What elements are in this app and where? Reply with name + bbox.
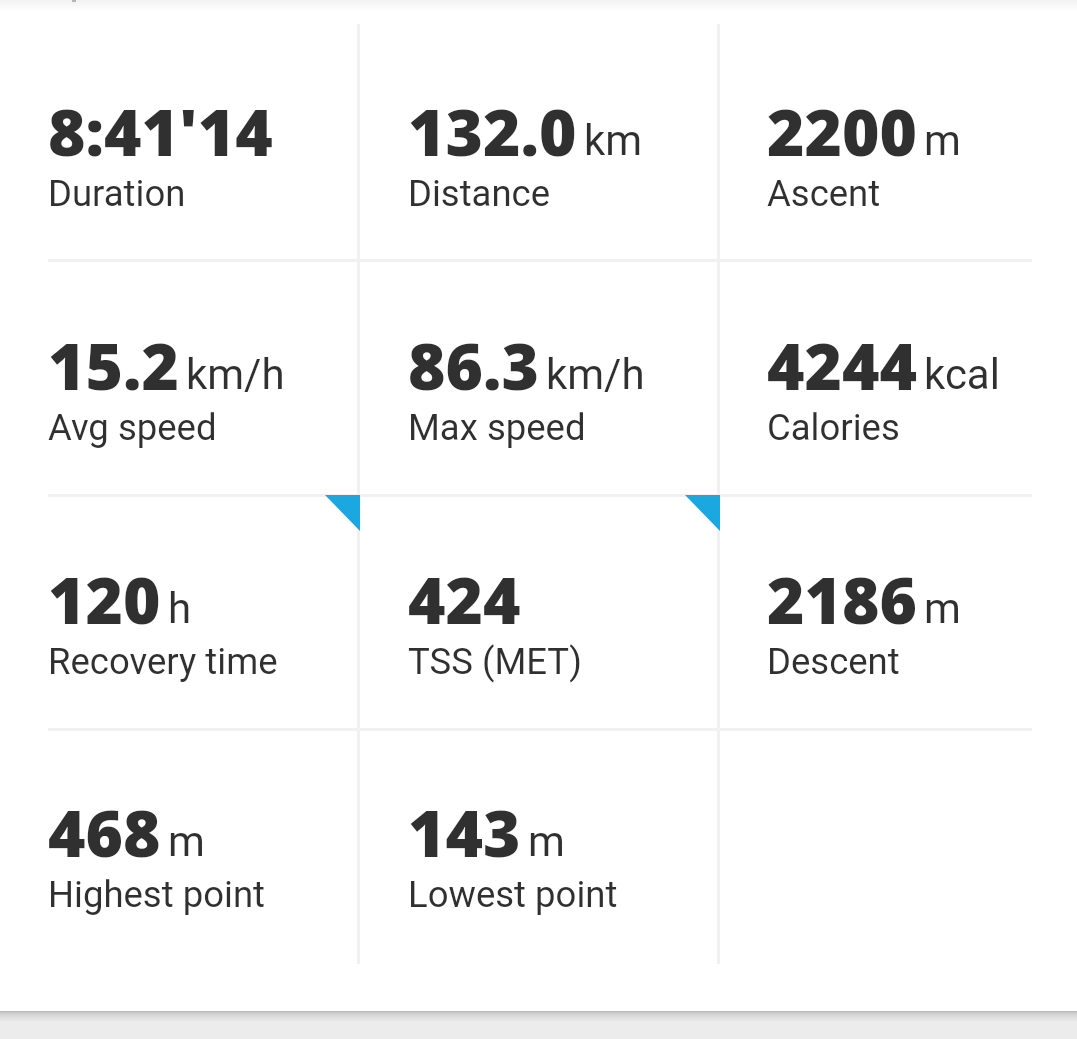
staticText: 132.0 (408, 88, 577, 175)
button[interactable]: 2200 (719, 26, 1077, 259)
staticText: 120 (48, 556, 161, 643)
staticText: Calories (767, 406, 900, 449)
staticText: 424 (408, 556, 521, 643)
staticText: TSS (MET) (408, 640, 582, 683)
button[interactable]: 468 (0, 727, 360, 963)
staticText: Distance (408, 172, 551, 215)
button[interactable]: 86.3 (360, 260, 720, 494)
staticText: m (168, 817, 205, 866)
staticText: km/h (186, 350, 285, 399)
staticText: Avg speed (48, 406, 217, 449)
staticText: 15.2 (48, 322, 179, 409)
staticText: 143 (408, 789, 521, 876)
staticText: Max speed (408, 406, 586, 449)
staticText: 86.3 (408, 322, 539, 409)
staticText: km (584, 116, 643, 165)
button[interactable]: 132.0 (360, 26, 720, 259)
button[interactable]: 2186 (719, 494, 1077, 729)
staticText: kcal (924, 350, 1000, 399)
button[interactable]: 15.2 (0, 260, 360, 494)
other: Estimated value (685, 495, 720, 531)
staticText: m (528, 817, 565, 866)
staticText: Duration (48, 172, 186, 215)
staticText: m (924, 584, 961, 633)
staticText: Ascent (767, 172, 881, 215)
button[interactable]: 4244 (719, 260, 1077, 494)
button[interactable]: 8:41'14 (0, 26, 360, 259)
button[interactable]: 143 (360, 727, 720, 963)
staticText: Recovery time (48, 640, 278, 683)
staticText: 2186 (767, 556, 917, 643)
staticText: Lowest point (408, 873, 618, 916)
staticText: km/h (546, 350, 645, 399)
staticText: 4244 (767, 322, 917, 409)
staticText: Descent (767, 640, 900, 683)
staticText: h (168, 584, 192, 633)
button[interactable]: 424 (360, 494, 720, 729)
staticText: 8:41'14 (48, 88, 273, 175)
button[interactable]: 120 (0, 494, 360, 729)
staticText: 468 (48, 789, 161, 876)
staticText: 2200 (767, 88, 917, 175)
other: Estimated value (325, 495, 360, 531)
staticText: Highest point (48, 873, 265, 916)
staticText: m (924, 116, 961, 165)
